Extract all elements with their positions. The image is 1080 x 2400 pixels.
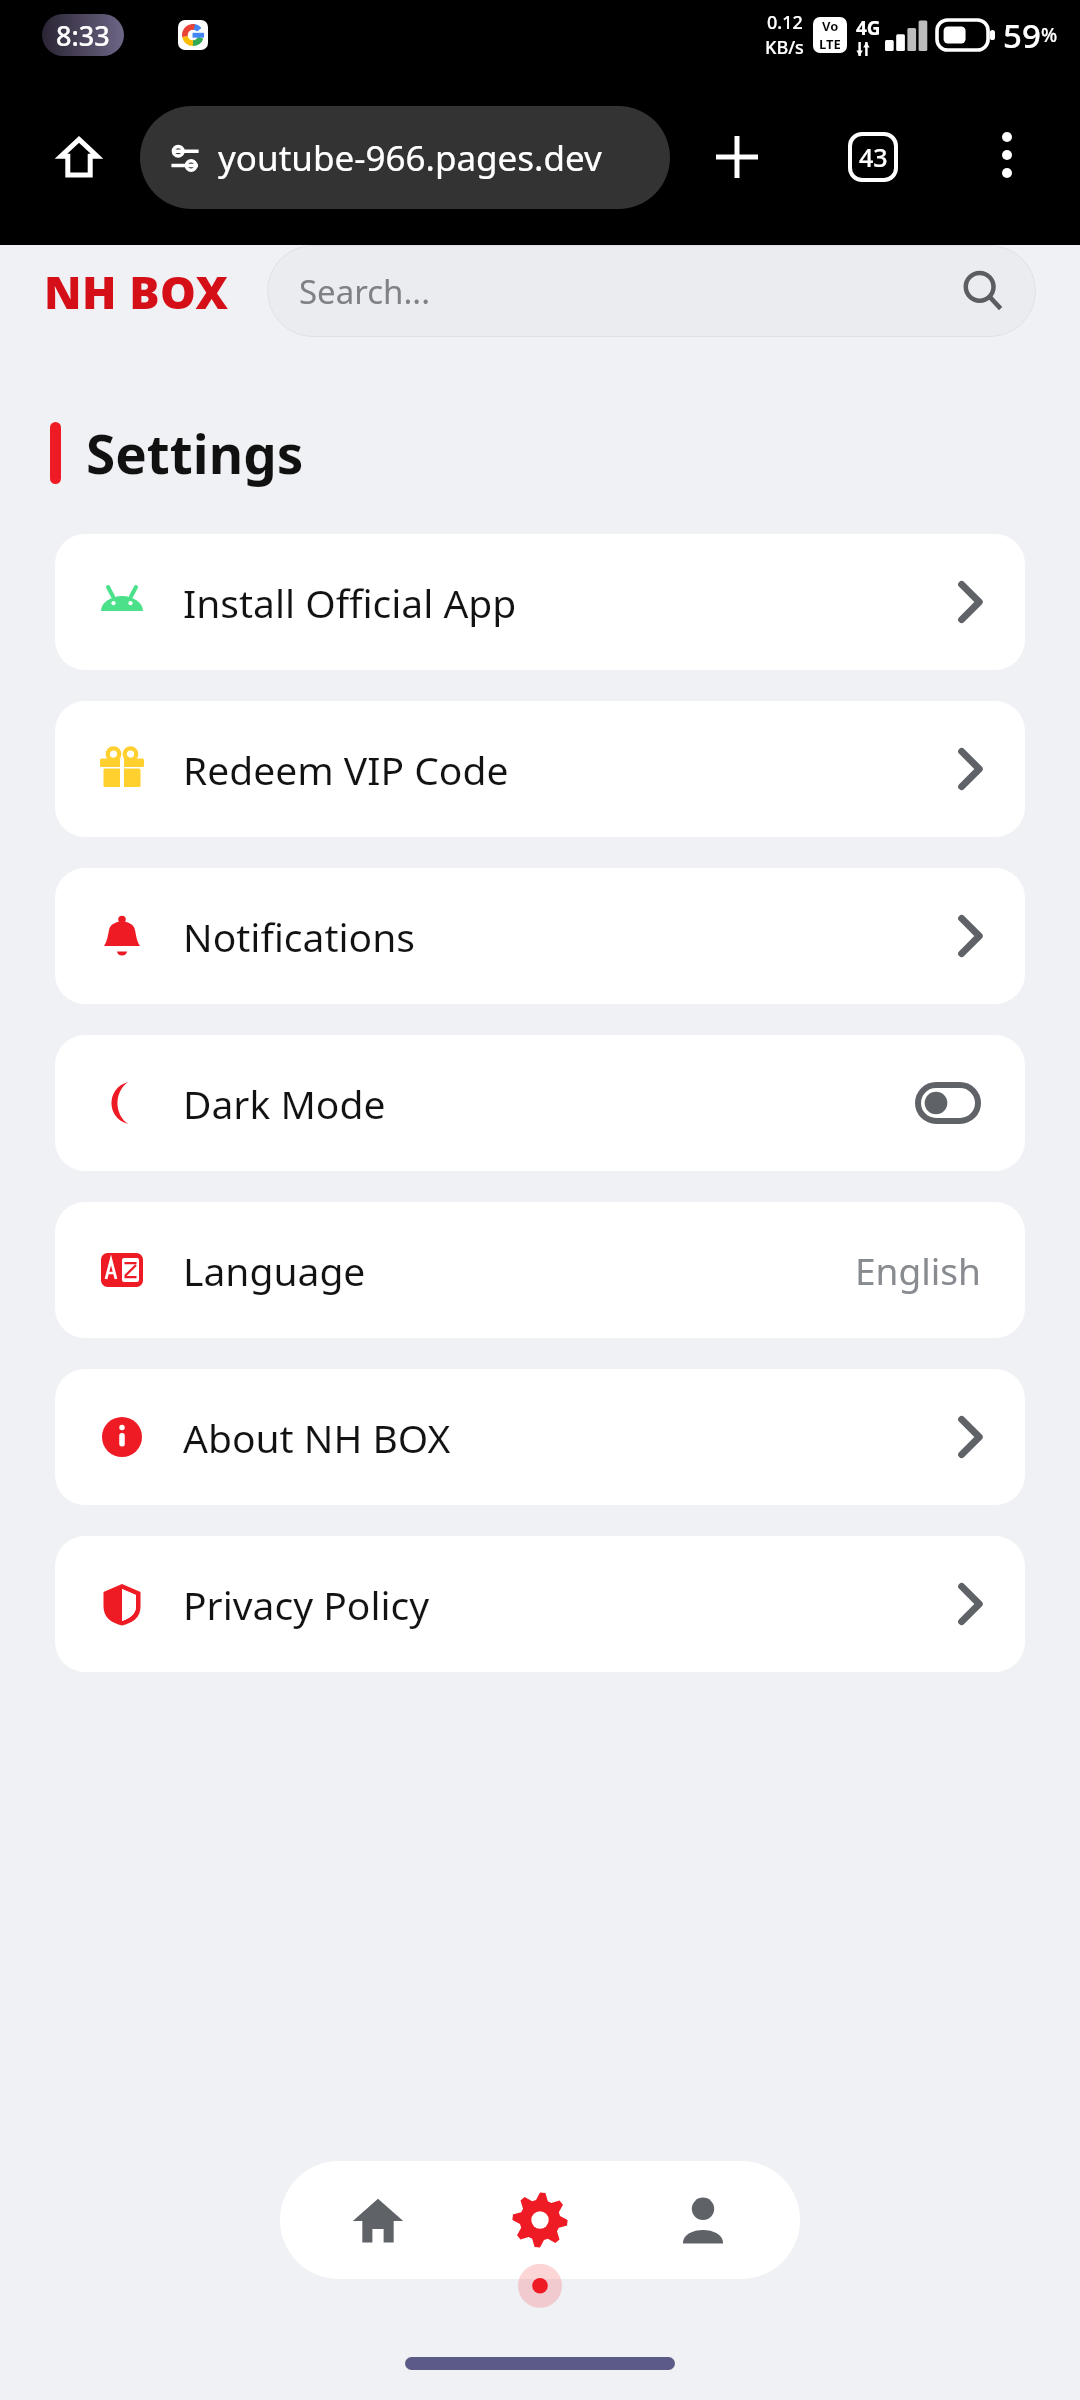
staticText: Privacy Policy <box>183 1578 430 1631</box>
staticText: 8:33 <box>56 17 110 54</box>
button[interactable]: Language <box>55 1202 1025 1338</box>
button[interactable]: Settings <box>475 2161 605 2279</box>
button[interactable]: Redeem VIP Code <box>55 701 1025 837</box>
staticText: 59 <box>1003 13 1041 58</box>
button[interactable]: Dark Mode <box>55 1035 1025 1171</box>
staticText: NH BOX <box>44 261 229 322</box>
staticText: KB/s <box>765 35 804 60</box>
staticText: English <box>855 1245 981 1295</box>
staticText: About NH BOX <box>183 1411 451 1464</box>
button[interactable]: Profile <box>638 2161 768 2279</box>
button[interactable]: Search... <box>267 245 1036 337</box>
button[interactable]: Privacy Policy <box>55 1536 1025 1672</box>
button[interactable]: Notifications <box>55 868 1025 1004</box>
button[interactable]: Home <box>42 120 116 194</box>
button[interactable]: New tab <box>700 120 774 194</box>
staticText: Search... <box>299 269 430 314</box>
staticText: youtube-966.pages.dev <box>218 134 602 182</box>
staticText: Notifications <box>183 910 415 963</box>
staticText: 0.12 <box>767 10 803 35</box>
staticText: NH BOX <box>44 261 229 322</box>
button[interactable]: Tabs <box>838 122 908 192</box>
button[interactable]: Home <box>313 2161 443 2279</box>
staticText: Settings <box>86 417 304 489</box>
staticText: % <box>1041 22 1058 48</box>
button[interactable]: youtube-966.pages.dev <box>140 106 670 209</box>
staticText: Vo <box>822 17 839 35</box>
staticText: Language <box>183 1244 366 1297</box>
staticText: 43 <box>859 140 888 174</box>
staticText: 4G <box>856 15 881 41</box>
staticText: Install Official App <box>183 576 517 629</box>
staticText: Dark Mode <box>183 1077 386 1130</box>
staticText: LTE <box>819 35 841 53</box>
button[interactable]: More options <box>972 120 1042 190</box>
button[interactable]: About NH BOX <box>55 1369 1025 1505</box>
staticText: Redeem VIP Code <box>183 743 509 796</box>
button[interactable]: Install Official App <box>55 534 1025 670</box>
